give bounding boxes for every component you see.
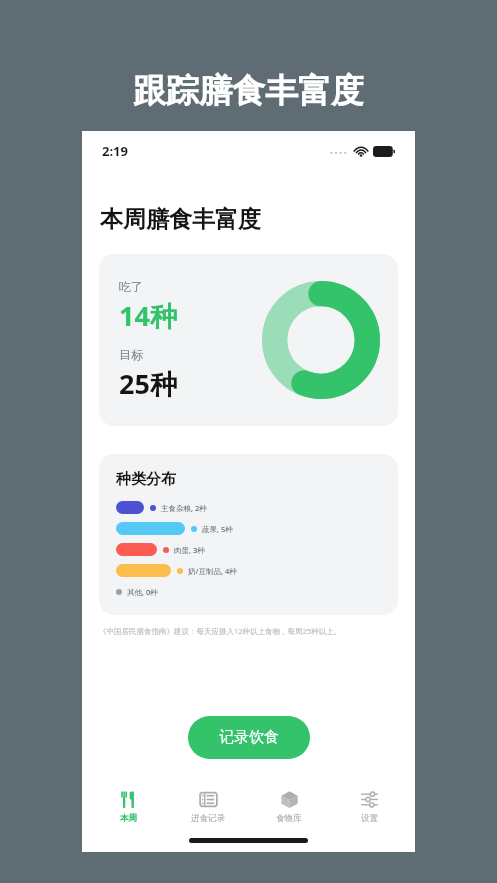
other: 食物库 [280, 790, 299, 809]
staticText: 目标 [119, 347, 143, 362]
staticText: 进食记录 [191, 813, 225, 824]
staticText: 2:19 [102, 142, 128, 160]
button[interactable]: 本周 [93, 786, 163, 828]
staticText: 《中国居民膳食指南》建议：每天应摄入12种以上食物，每周25种以上。 [99, 626, 342, 636]
other: 进食记录 [199, 790, 218, 809]
staticText: 跟踪膳食丰富度 [133, 70, 364, 112]
staticText: 14种 [119, 297, 177, 334]
button[interactable]: 吃了 [99, 254, 398, 426]
button[interactable]: 种类分布 [99, 454, 398, 615]
staticText: 本周膳食丰富度 [100, 205, 261, 234]
other: 本周 [119, 790, 138, 809]
button[interactable]: 食物库 [254, 786, 324, 828]
staticText: 其他, 0种 [127, 587, 158, 597]
other: 设置 [360, 790, 379, 809]
button[interactable]: 设置 [334, 786, 404, 828]
staticText: 肉蛋, 3种 [174, 545, 205, 555]
staticText: 种类分布 [116, 470, 176, 489]
staticText: 奶/豆制品, 4种 [188, 566, 237, 576]
staticText: 记录饮食 [219, 728, 279, 747]
staticText: 蔬果, 5种 [202, 524, 233, 534]
staticText: 本周 [120, 813, 137, 824]
staticText: 主食杂粮, 2种 [161, 503, 207, 513]
staticText: 食物库 [276, 813, 302, 824]
staticText: 吃了 [119, 279, 143, 294]
button[interactable]: 进食记录 [173, 786, 243, 828]
staticText: 25种 [119, 365, 177, 402]
staticText: 设置 [361, 813, 378, 824]
button[interactable]: 记录饮食 [188, 716, 310, 759]
